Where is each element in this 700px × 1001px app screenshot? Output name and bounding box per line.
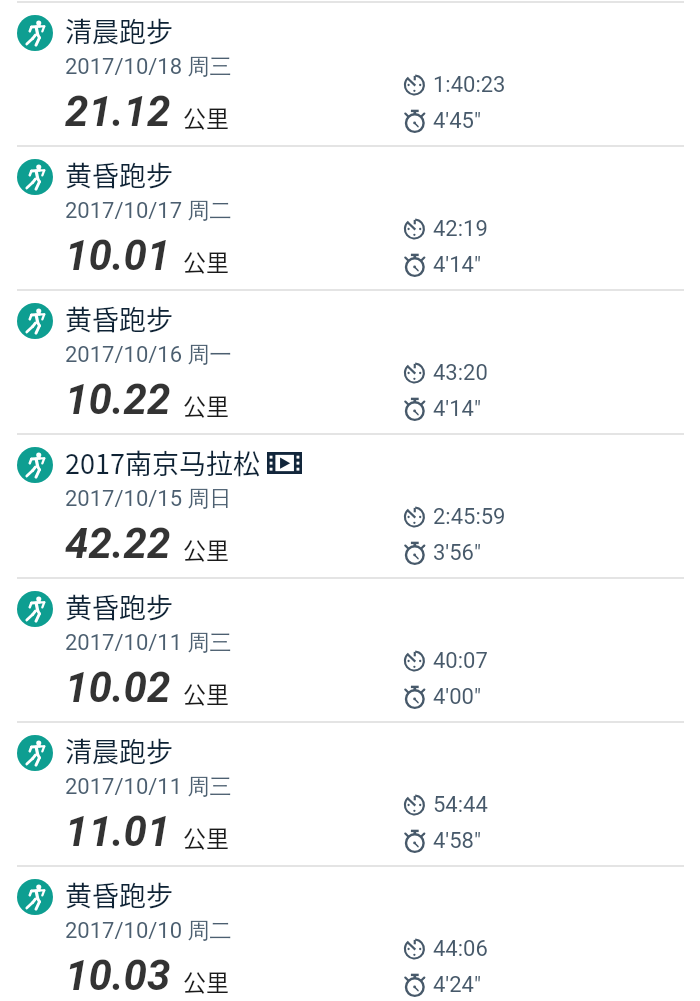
staticText: 黄昏跑步 xyxy=(65,299,173,338)
other: Running activity xyxy=(17,303,53,339)
button[interactable]: Running activity xyxy=(0,723,700,865)
button[interactable]: Running activity xyxy=(0,3,700,145)
staticText: 清晨跑步 xyxy=(65,731,173,770)
other: Running activity xyxy=(17,735,53,771)
staticText: 21.12 xyxy=(65,87,171,136)
other: Running activity xyxy=(17,879,53,915)
staticText: 2017/10/10 周二 xyxy=(65,917,232,945)
button[interactable]: Running activity xyxy=(0,291,700,433)
staticText: 清晨跑步 xyxy=(65,11,173,50)
staticText: 42:19 xyxy=(433,216,488,242)
staticText: 黄昏跑步 xyxy=(65,155,173,194)
staticText: 2017/10/15 周日 xyxy=(65,485,232,513)
staticText: 54:44 xyxy=(433,792,488,818)
staticText: 4'58" xyxy=(433,828,481,854)
staticText: 10.03 xyxy=(65,951,171,1000)
button[interactable]: Running activity xyxy=(0,435,700,577)
staticText: 11.01 xyxy=(65,807,171,856)
staticText: 公里 xyxy=(183,532,229,565)
staticText: 10.01 xyxy=(65,231,171,280)
staticText: 40:07 xyxy=(433,648,488,674)
other: Running activity xyxy=(17,447,53,483)
staticText: 10.22 xyxy=(65,375,171,424)
other: Has video xyxy=(267,452,302,474)
staticText: 44:06 xyxy=(433,936,488,962)
staticText: 2017/10/18 周三 xyxy=(65,53,232,81)
staticText: 2017/10/17 周二 xyxy=(65,197,232,225)
button[interactable]: Running activity xyxy=(0,867,700,1001)
staticText: 43:20 xyxy=(433,360,488,386)
staticText: 2017/10/11 周三 xyxy=(65,773,232,801)
staticText: 公里 xyxy=(183,100,229,133)
staticText: 2017南京马拉松 xyxy=(65,443,260,482)
staticText: 4'45" xyxy=(433,108,481,134)
button[interactable]: Running activity xyxy=(0,579,700,721)
button[interactable]: Running activity xyxy=(0,147,700,289)
staticText: 3'56" xyxy=(433,540,481,566)
staticText: 公里 xyxy=(183,964,229,997)
staticText: 4'00" xyxy=(433,684,481,710)
staticText: 公里 xyxy=(183,676,229,709)
staticText: 4'24" xyxy=(433,972,481,998)
other: Running activity xyxy=(17,15,53,51)
other: Running activity xyxy=(17,591,53,627)
staticText: 2017/10/16 周一 xyxy=(65,341,232,369)
staticText: 2:45:59 xyxy=(433,504,506,530)
staticText: 黄昏跑步 xyxy=(65,875,173,914)
staticText: 1:40:23 xyxy=(433,72,506,98)
staticText: 10.02 xyxy=(65,663,171,712)
other: Running activity xyxy=(17,159,53,195)
staticText: 4'14" xyxy=(433,252,481,278)
staticText: 黄昏跑步 xyxy=(65,587,173,626)
staticText: 公里 xyxy=(183,820,229,853)
staticText: 公里 xyxy=(183,244,229,277)
staticText: 公里 xyxy=(183,388,229,421)
staticText: 2017/10/11 周三 xyxy=(65,629,232,657)
staticText: 4'14" xyxy=(433,396,481,422)
staticText: 42.22 xyxy=(65,519,171,568)
